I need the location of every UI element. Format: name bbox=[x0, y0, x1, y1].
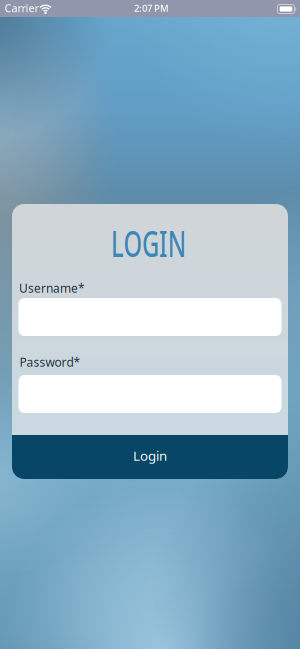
button[interactable]: Login bbox=[12, 435, 288, 479]
staticText: Password* bbox=[19, 354, 80, 370]
staticText: 2:07 PM bbox=[134, 2, 169, 14]
button[interactable] bbox=[18, 375, 281, 413]
staticText: LOGIN bbox=[91, 219, 205, 267]
staticText: Carrier bbox=[4, 1, 38, 15]
button[interactable] bbox=[18, 298, 281, 336]
staticText: Username* bbox=[19, 280, 85, 296]
staticText: Login bbox=[133, 447, 167, 464]
